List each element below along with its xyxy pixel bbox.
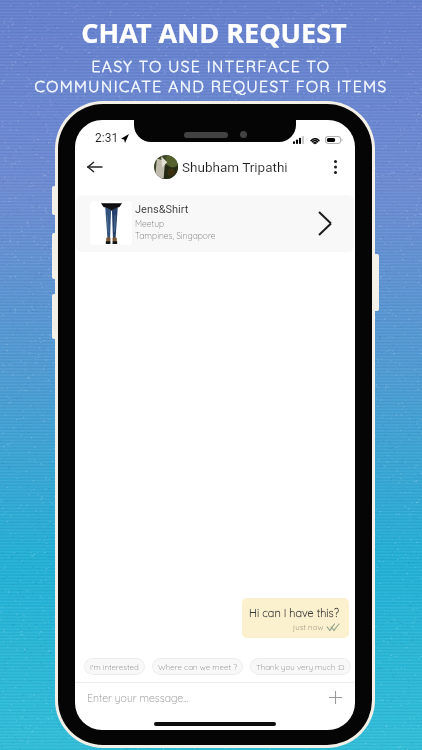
button[interactable]: Jens&Shirt — [76, 195, 354, 252]
staticText: just now — [293, 622, 324, 632]
button[interactable]: Where can we meet ? — [152, 658, 243, 675]
staticText: Meetup — [135, 218, 165, 229]
staticText: Thank you very much :D — [256, 662, 345, 672]
button[interactable]: Hi can I have this? — [242, 598, 349, 638]
staticText: Where can we meet ? — [158, 662, 237, 672]
staticText: I'm interested — [90, 662, 139, 672]
button[interactable]: Add attachment — [325, 687, 345, 707]
button[interactable]: Shubham Tripathi — [154, 155, 288, 179]
staticText: Shubham Tripathi — [182, 159, 288, 175]
button[interactable]: More options — [322, 154, 348, 180]
staticText: Jens&Shirt — [135, 203, 189, 216]
staticText: EASY TO USE INTERFACE TO COMMUNICATE AND… — [0, 56, 422, 96]
staticText: 2:31 — [95, 131, 119, 145]
button[interactable]: I'm interested — [84, 658, 145, 675]
button[interactable]: Enter your message... — [75, 683, 355, 711]
staticText: Hi can I have this? — [249, 606, 339, 620]
staticText: CHAT AND REQUEST — [81, 14, 347, 51]
button[interactable]: Thank you very much :D — [250, 658, 351, 675]
button[interactable]: Back — [78, 151, 110, 183]
staticText: Tampines, Singapore — [135, 230, 216, 241]
staticText: Enter your message... — [87, 691, 189, 704]
